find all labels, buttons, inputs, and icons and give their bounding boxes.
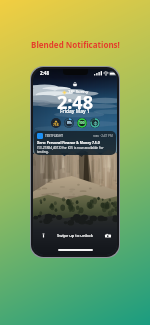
button[interactable] [90, 118, 100, 128]
staticText: Swipe up to unlock [57, 233, 94, 238]
staticText: Friday May 1 [60, 108, 90, 115]
staticText: TESTFLIGHT [45, 134, 64, 138]
button[interactable]: 8% [64, 118, 74, 128]
staticText: 18° Sunny [68, 89, 89, 95]
staticText: Xero: Personal Finance & Money 7.5.0 [37, 140, 100, 145]
other: Locked [72, 81, 78, 87]
staticText: 2:48 [57, 90, 93, 115]
staticText: 8% [67, 121, 72, 125]
staticText: Blended Notifications! [31, 39, 120, 50]
button[interactable]: Camera [103, 231, 112, 240]
button[interactable]: Flashlight [39, 231, 48, 240]
button[interactable]: 758 [51, 118, 61, 128]
staticText: (13.21884,4013) for iOS is now available… [37, 145, 104, 153]
staticText: 100 [79, 121, 85, 125]
staticText: now · 2:47 PM [93, 134, 113, 138]
button[interactable]: 100 [77, 118, 87, 128]
button[interactable]: TESTFLIGHT [34, 131, 116, 155]
staticText: 2:48 [40, 70, 49, 76]
staticText: 758 [53, 123, 59, 127]
